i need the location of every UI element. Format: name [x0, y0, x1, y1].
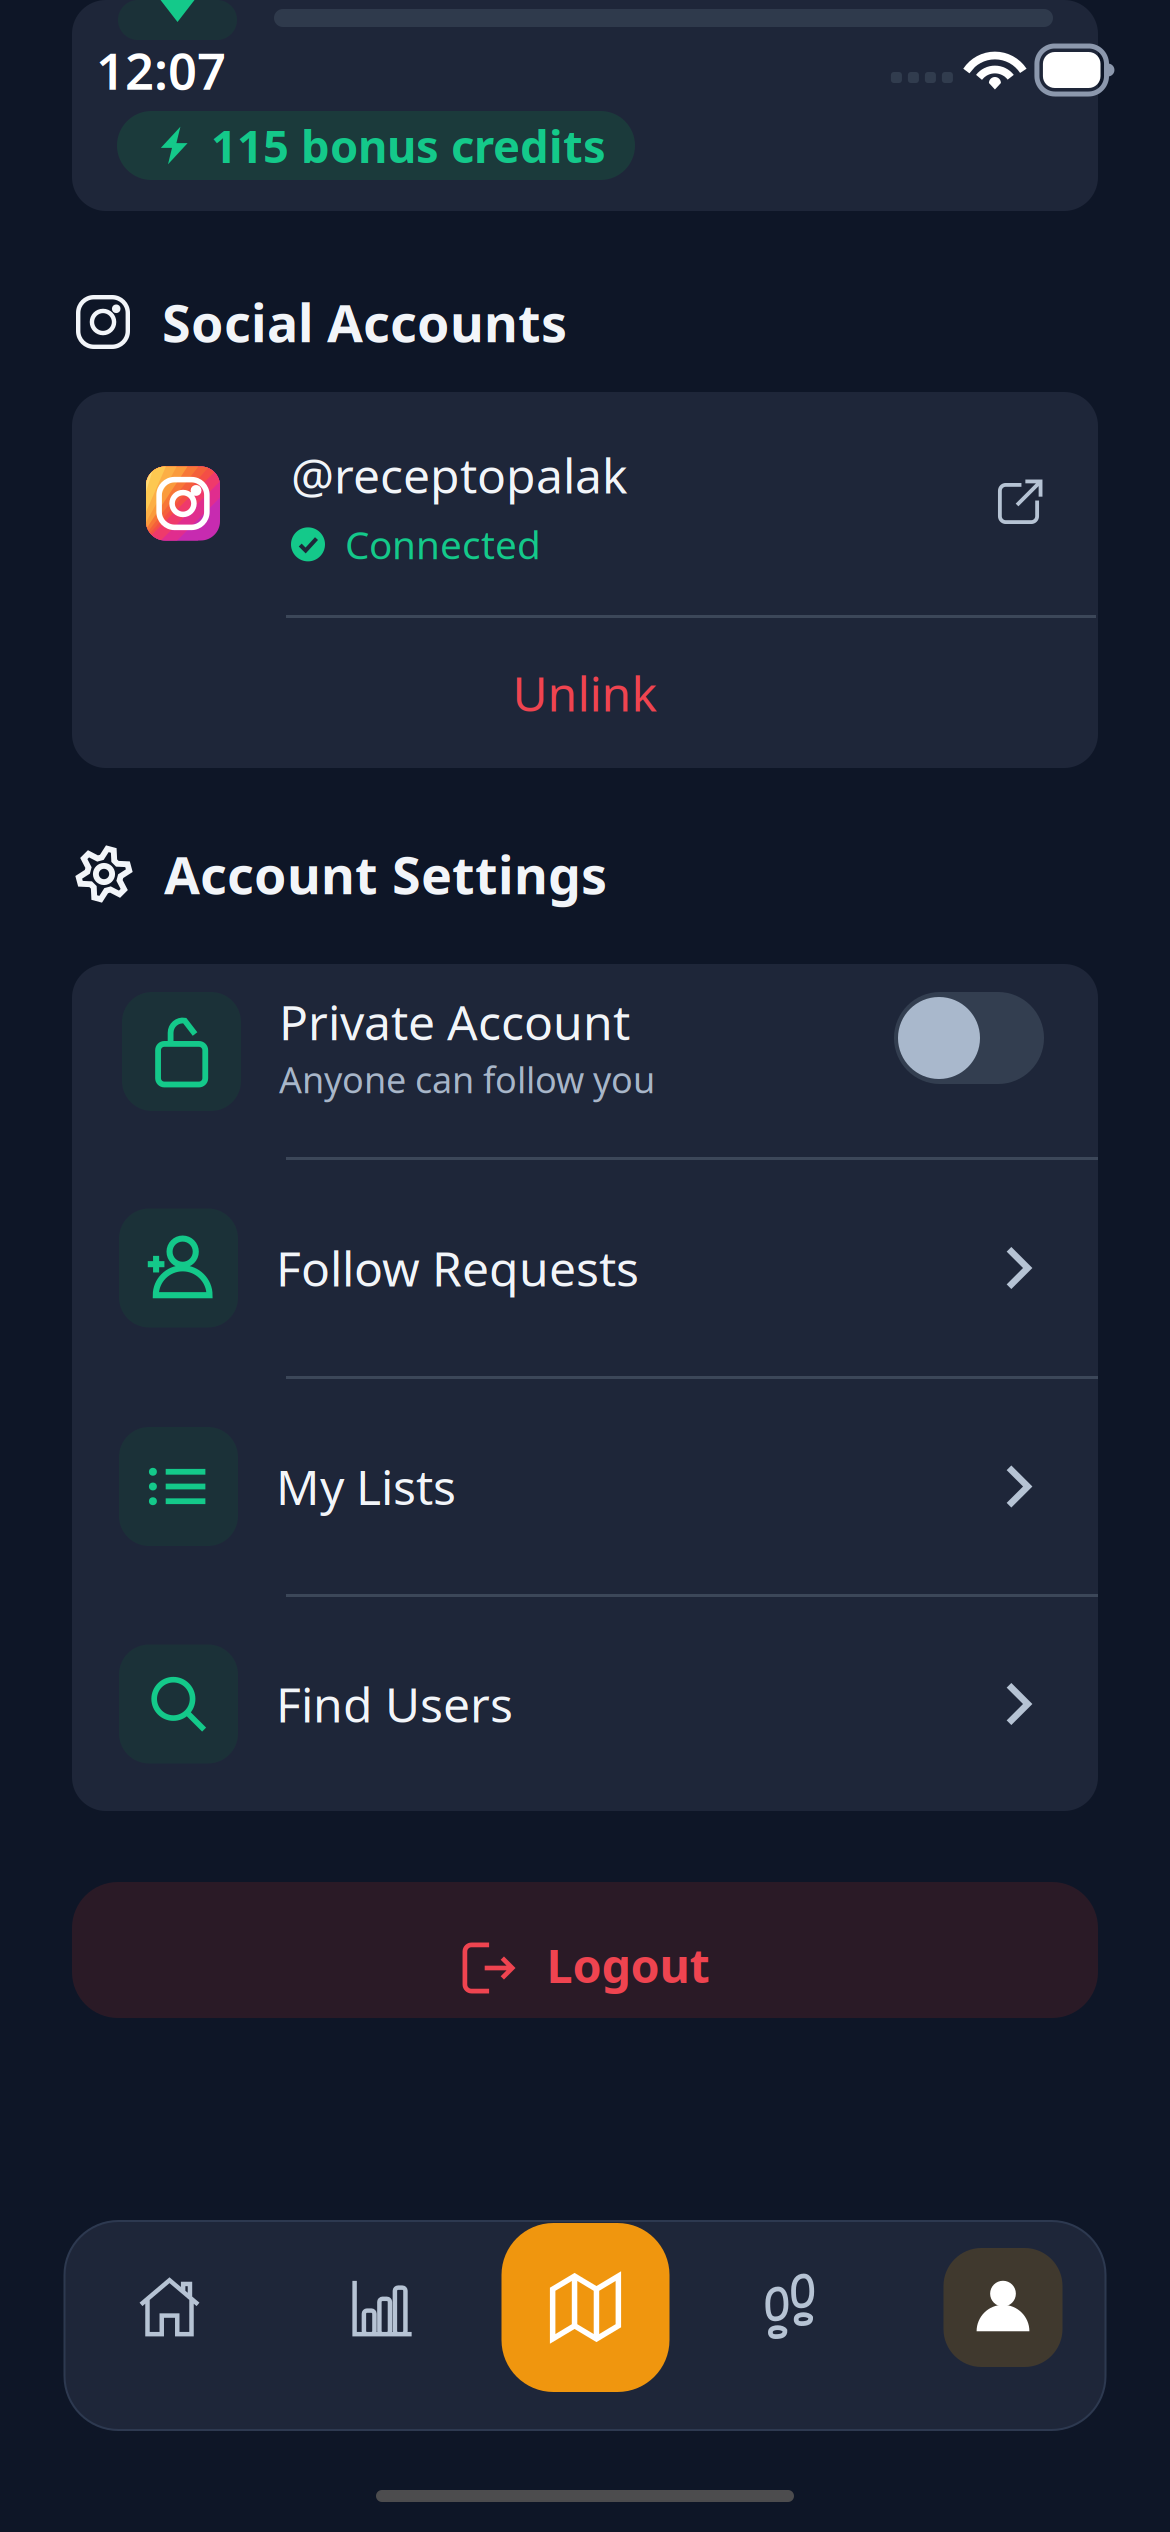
button[interactable]: Private Account	[894, 992, 1044, 1111]
staticText: 115 bonus credits	[211, 115, 606, 176]
button[interactable]: Logout	[0, 1882, 1170, 2018]
button[interactable]: Follow Requests	[72, 1160, 1098, 1376]
staticText: Anyone can follow you	[279, 1055, 655, 1103]
staticText: Find Users	[276, 1672, 513, 1736]
button[interactable]: Profile	[943, 2223, 1062, 2392]
button[interactable]: Open Instagram profile	[980, 465, 1057, 542]
staticText: Private Account	[279, 990, 630, 1053]
staticText: @receptopalak	[291, 443, 628, 507]
button[interactable]: Steps	[729, 2223, 849, 2392]
staticText: Unlink	[512, 661, 657, 725]
staticText: Connected	[345, 519, 541, 570]
button[interactable]: My Lists	[72, 1379, 1098, 1594]
button[interactable]: Unlink	[72, 618, 1098, 768]
button[interactable]: Home	[109, 2223, 229, 2392]
staticText: Logout	[546, 1934, 709, 1996]
button[interactable]: Find Users	[72, 1597, 1098, 1811]
button[interactable]: Statistics	[322, 2223, 442, 2392]
button[interactable]: Map	[501, 2223, 669, 2392]
staticText: 12:07	[96, 36, 226, 104]
staticText: Social Accounts	[162, 287, 567, 357]
staticText: My Lists	[276, 1455, 456, 1518]
staticText: Follow Requests	[276, 1236, 639, 1300]
staticText: Account Settings	[164, 839, 607, 909]
